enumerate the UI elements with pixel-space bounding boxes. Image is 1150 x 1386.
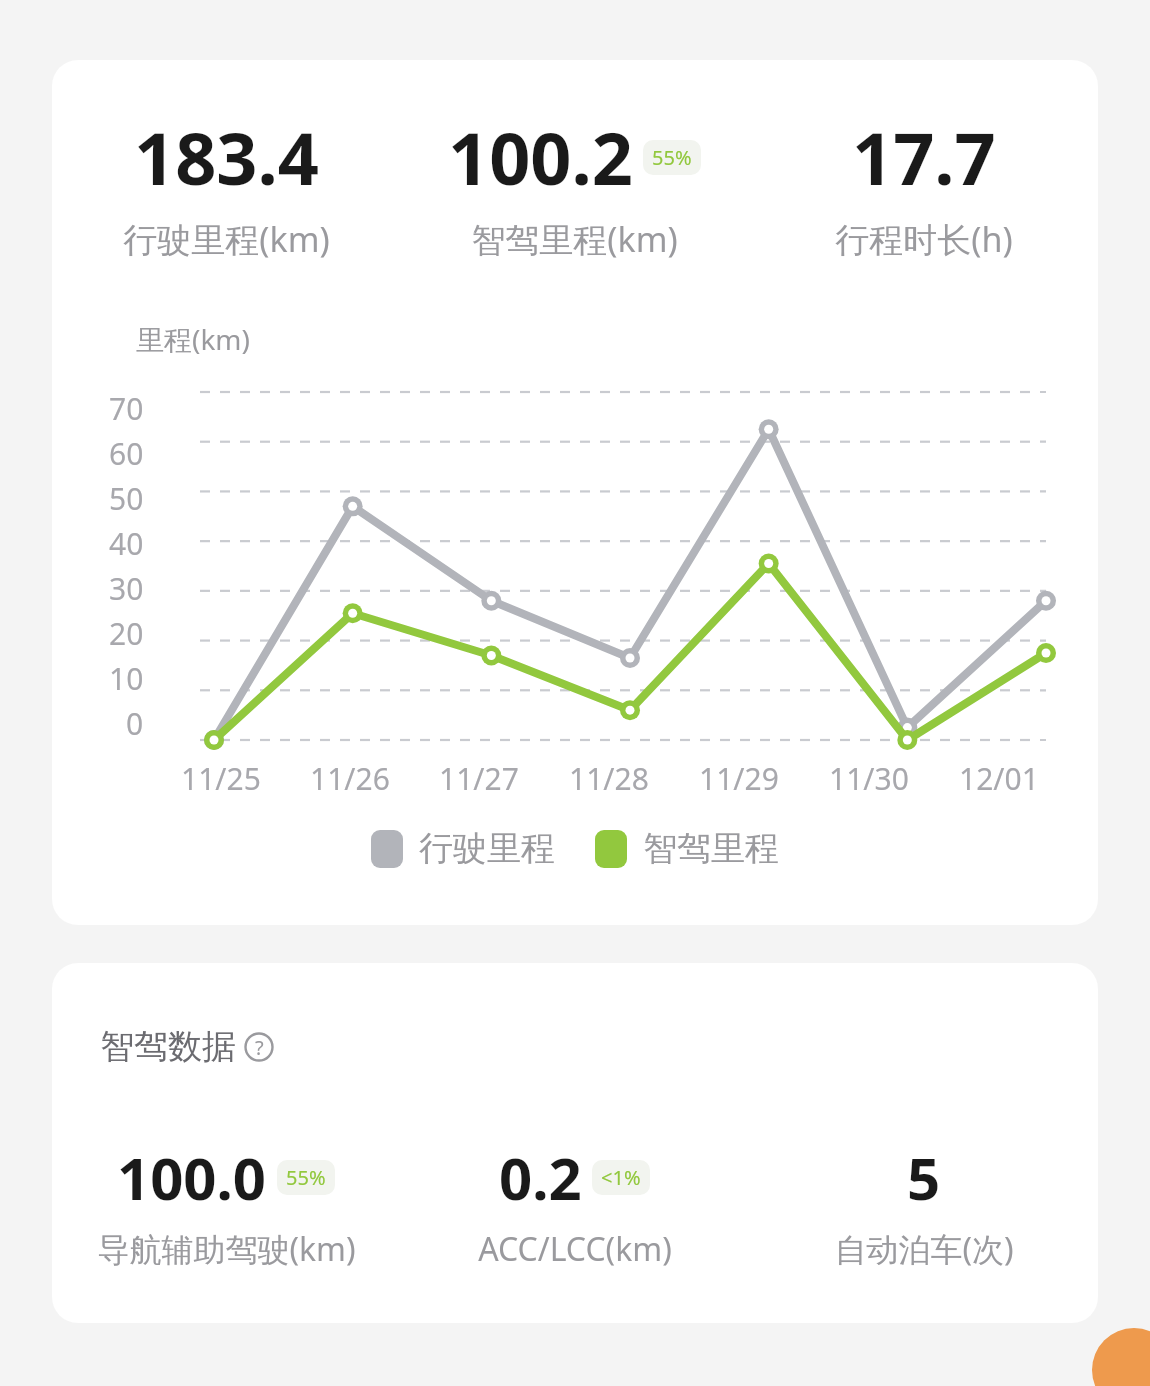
staticText: 50 [109, 478, 144, 519]
staticText: 100.2 [448, 108, 633, 206]
staticText: 17.7 [852, 108, 996, 206]
staticText: 100.0 [117, 1138, 267, 1217]
button[interactable]: 智驾数据说明 [52, 963, 1098, 1323]
staticText: 183.4 [134, 108, 319, 206]
staticText: 11/28 [569, 758, 649, 799]
staticText: 70 [109, 388, 144, 429]
staticText: <1% [601, 1164, 641, 1191]
staticText: 智驾数据 [100, 1025, 236, 1068]
button[interactable]: 智驾数据说明 [100, 1025, 274, 1068]
staticText: 行程时长(h) [835, 216, 1013, 262]
staticText: 行驶里程(km) [123, 216, 330, 262]
staticText: 10 [109, 658, 144, 699]
staticText: 40 [109, 523, 144, 564]
staticText: 11/29 [699, 758, 779, 799]
button[interactable]: Assistant [1092, 1328, 1150, 1386]
staticText: 0 [126, 703, 144, 744]
staticText: 行驶里程 [419, 827, 555, 870]
staticText: 自动泊车(次) [834, 1227, 1014, 1271]
staticText: ? [255, 1034, 264, 1061]
staticText: 0.2 [499, 1138, 582, 1217]
staticText: 55% [286, 1164, 326, 1191]
staticText: ACC/LCC(km) [478, 1227, 672, 1271]
staticText: 11/26 [310, 758, 390, 799]
staticText: 30 [109, 568, 144, 609]
staticText: 11/30 [829, 758, 909, 799]
staticText: 智驾里程 [643, 827, 779, 870]
staticText: 55% [652, 144, 692, 171]
button[interactable]: 183.4 [52, 60, 1098, 925]
staticText: 导航辅助驾驶(km) [97, 1227, 356, 1271]
staticText: 智驾里程(km) [471, 216, 678, 262]
staticText: 12/01 [959, 758, 1039, 799]
staticText: 20 [109, 613, 144, 654]
staticText: 11/27 [439, 758, 519, 799]
staticText: 11/25 [181, 758, 261, 799]
staticText: 5 [907, 1138, 941, 1217]
staticText: 60 [109, 433, 144, 474]
staticText: 里程(km) [136, 320, 250, 358]
